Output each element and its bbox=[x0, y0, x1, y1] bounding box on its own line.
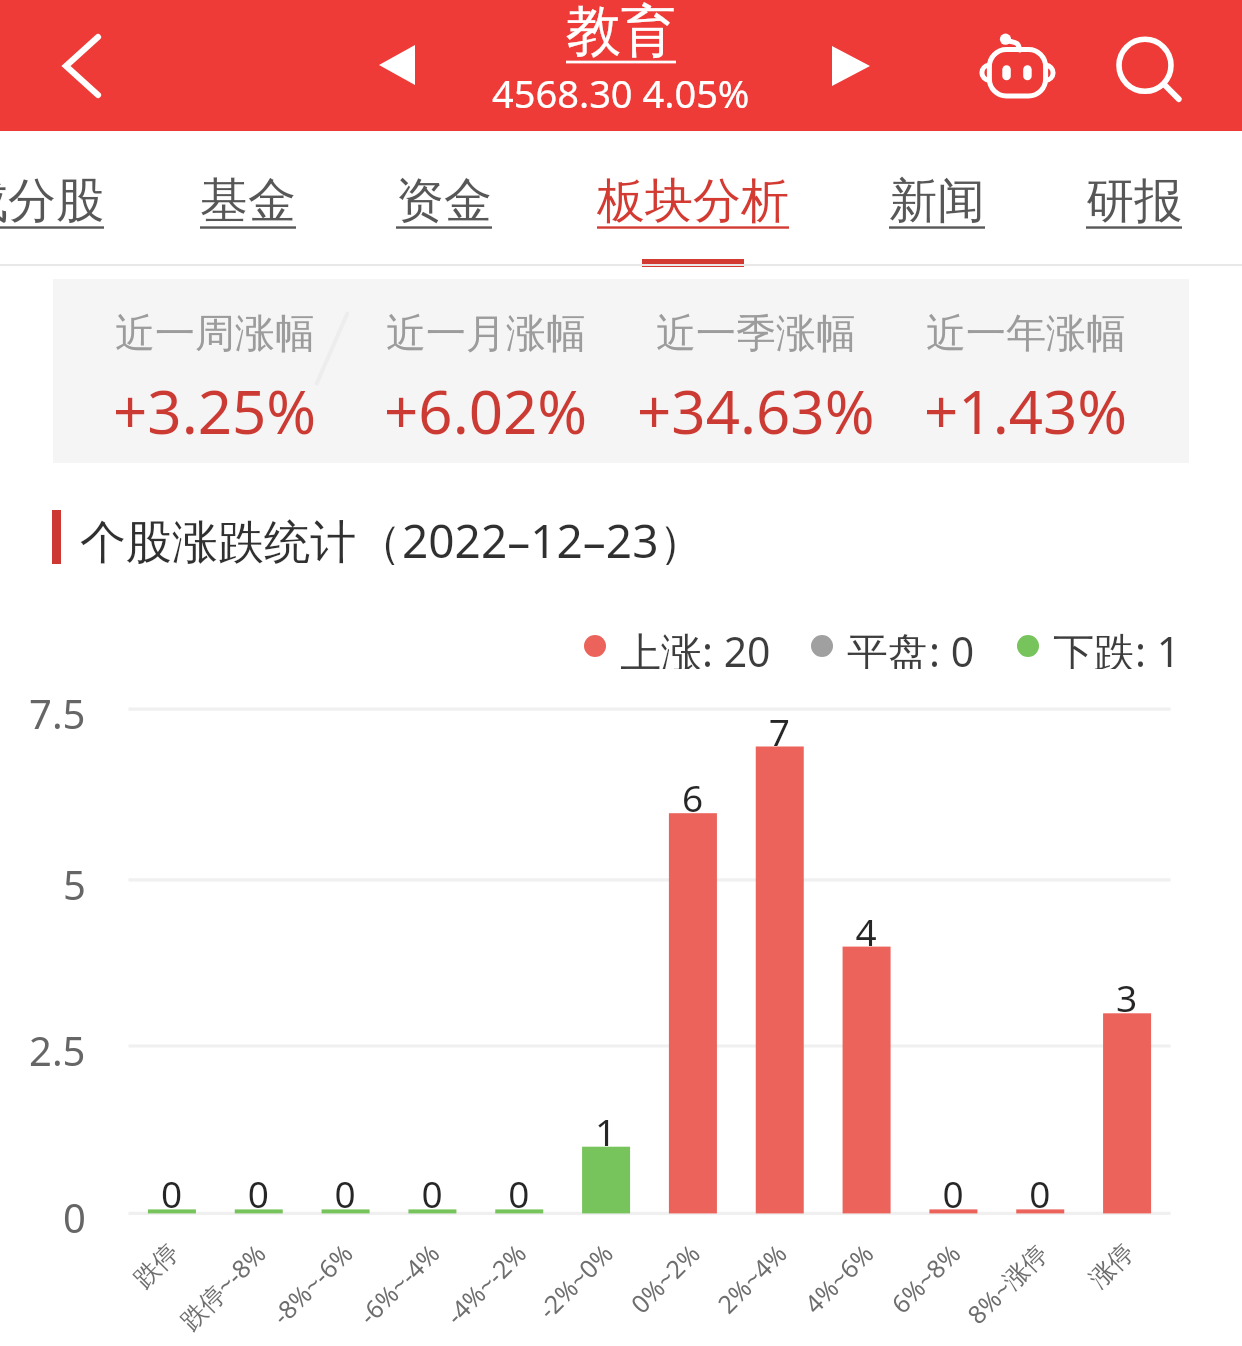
button[interactable]: 平盘: 0 bbox=[811, 623, 975, 669]
button[interactable]: 下跌: 1 bbox=[1017, 623, 1181, 669]
staticText: 成分股 bbox=[0, 171, 104, 231]
staticText: 近一季涨幅 bbox=[656, 308, 856, 358]
button[interactable]: 近一周涨幅 bbox=[55, 279, 375, 463]
button[interactable]: 上涨: 20 bbox=[584, 623, 771, 669]
staticText: 5 bbox=[63, 857, 86, 911]
staticText: 4568.30 4.05% bbox=[492, 67, 750, 119]
button[interactable]: 近一季涨幅 bbox=[596, 279, 916, 463]
button[interactable]: 成分股 bbox=[0, 131, 119, 265]
button[interactable]: 资金 bbox=[381, 131, 507, 265]
button[interactable]: 板块分析 bbox=[582, 131, 804, 265]
staticText: 平盘: 0 bbox=[847, 623, 975, 669]
staticText: 2.5 bbox=[29, 1023, 86, 1077]
staticText: 上涨: 20 bbox=[620, 623, 771, 669]
staticText: +1.43% bbox=[924, 370, 1128, 452]
staticText: 下跌: 1 bbox=[1053, 623, 1181, 669]
button[interactable]: 新闻 bbox=[874, 131, 1000, 265]
staticText: +34.63% bbox=[637, 370, 875, 452]
button[interactable]: 教育 bbox=[566, 0, 676, 66]
button[interactable]: AI assistant bbox=[959, 12, 1071, 116]
staticText: 板块分析 bbox=[597, 171, 789, 231]
button[interactable]: Back bbox=[32, 16, 132, 116]
staticText: 研报 bbox=[1086, 171, 1182, 231]
button[interactable]: Previous sector bbox=[357, 25, 437, 105]
staticText: 7.5 bbox=[29, 686, 86, 740]
staticText: +3.25% bbox=[113, 370, 317, 452]
button[interactable]: Search bbox=[1090, 18, 1204, 118]
staticText: 基金 bbox=[200, 171, 296, 231]
button[interactable]: Next sector bbox=[811, 26, 891, 106]
button[interactable]: 基金 bbox=[185, 131, 311, 265]
staticText: 个股涨跌统计（2022–12–23） bbox=[80, 509, 705, 565]
staticText: 近一月涨幅 bbox=[386, 308, 586, 358]
staticText: 资金 bbox=[396, 171, 492, 231]
staticText: 新闻 bbox=[889, 171, 985, 231]
staticText: 0 bbox=[63, 1190, 86, 1244]
button[interactable]: 研报 bbox=[1071, 131, 1197, 265]
button[interactable]: 近一年涨幅 bbox=[866, 279, 1186, 463]
staticText: 近一年涨幅 bbox=[926, 308, 1126, 358]
button[interactable]: 近一月涨幅 bbox=[326, 279, 646, 463]
staticText: 近一周涨幅 bbox=[115, 308, 315, 358]
staticText: +6.02% bbox=[384, 370, 588, 452]
